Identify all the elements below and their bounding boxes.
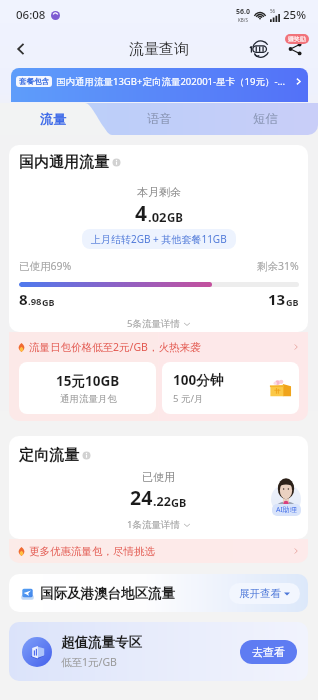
- staticText: 去查看: [252, 645, 285, 659]
- staticText: 流量日包价格低至2元/GB，火热来袭: [29, 340, 201, 354]
- staticText: 24: [130, 484, 153, 511]
- button[interactable]: Share: [282, 36, 308, 62]
- staticText: KB/S: [238, 17, 248, 23]
- staticText: 4: [135, 199, 148, 228]
- button[interactable]: AI assistant: [269, 474, 303, 516]
- button[interactable]: 短信: [212, 103, 318, 135]
- staticText: 56: [270, 8, 276, 14]
- button[interactable]: Back: [6, 34, 36, 64]
- staticText: 更多优惠流量包，尽情挑选: [29, 545, 155, 558]
- staticText: 5条流量详情: [127, 317, 180, 330]
- staticText: AI助理: [276, 505, 297, 515]
- staticText: .22: [153, 493, 171, 510]
- staticText: 100分钟: [173, 371, 224, 389]
- staticText: .98: [28, 295, 42, 308]
- staticText: 56.0: [236, 7, 250, 17]
- staticText: 低至1元/GB: [61, 655, 117, 669]
- staticText: 5 元/月: [173, 392, 204, 405]
- button[interactable]: 展开查看: [229, 583, 300, 604]
- staticText: 流量查询: [129, 40, 189, 59]
- staticText: 已使用69%: [19, 259, 72, 273]
- staticText: 短信: [253, 111, 278, 127]
- staticText: 国际及港澳台地区流量: [40, 585, 175, 602]
- staticText: GB: [42, 296, 55, 308]
- staticText: GB: [167, 210, 183, 226]
- button[interactable]: 更多优惠流量包，尽情挑选: [9, 539, 308, 563]
- staticText: 25%: [283, 7, 306, 23]
- staticText: 上月结转2GB + 其他套餐11GB: [91, 232, 227, 246]
- staticText: 剩余31%: [257, 259, 299, 273]
- button[interactable]: 去查看: [240, 640, 297, 664]
- button[interactable]: 5条流量详情: [9, 316, 308, 331]
- button[interactable]: 国际及港澳台地区流量: [9, 574, 308, 612]
- staticText: 展开查看: [239, 587, 281, 600]
- staticText: 通用流量月包: [60, 393, 117, 405]
- staticText: 套餐包含: [19, 77, 49, 86]
- staticText: 15元10GB: [56, 372, 120, 390]
- staticText: 06:08: [16, 7, 46, 23]
- button[interactable]: 流量: [0, 103, 106, 135]
- button[interactable]: 语音: [106, 103, 212, 135]
- staticText: 定向流量: [19, 446, 79, 465]
- staticText: 国内通用流量: [19, 153, 109, 172]
- button[interactable]: 超值流量专区: [9, 622, 308, 681]
- staticText: 已使用: [142, 470, 175, 484]
- staticText: GB: [286, 296, 299, 308]
- staticText: .02: [148, 208, 167, 226]
- staticText: 超值流量专区: [61, 634, 142, 651]
- button[interactable]: 套餐包含: [11, 68, 308, 102]
- staticText: 本月剩余: [137, 185, 181, 199]
- button[interactable]: 1条流量详情: [9, 517, 308, 532]
- staticText: 1条流量详情: [127, 518, 180, 531]
- staticText: 赚奖励: [288, 35, 306, 43]
- staticText: 流量: [40, 111, 66, 127]
- button[interactable]: 10000 customer service: [246, 36, 272, 62]
- staticText: 国内通用流量13GB+定向流量202001-星卡（19元）-...: [56, 75, 286, 88]
- staticText: 13: [268, 289, 286, 309]
- button[interactable]: 15元10GB: [19, 362, 156, 414]
- staticText: 8: [19, 289, 28, 309]
- staticText: 语音: [147, 111, 172, 127]
- button[interactable]: 流量日包价格低至2元/GB，火热来袭: [9, 332, 308, 362]
- staticText: GB: [171, 495, 187, 510]
- button[interactable]: 上月结转2GB + 其他套餐11GB: [82, 229, 236, 249]
- button[interactable]: 100分钟: [162, 362, 299, 414]
